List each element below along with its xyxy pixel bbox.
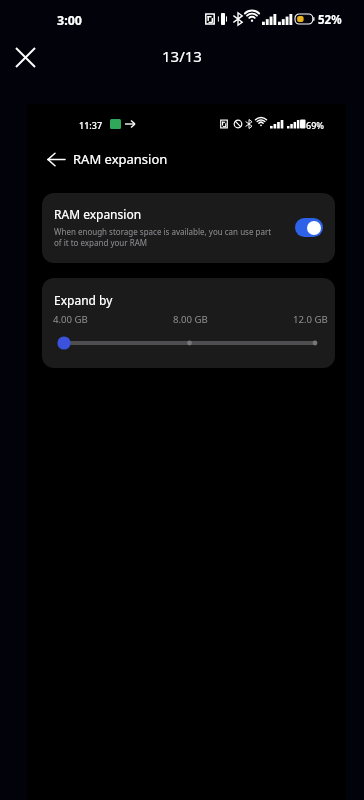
staticText: Expand by	[54, 292, 113, 308]
button[interactable]: RAM expansion	[42, 193, 335, 263]
button[interactable]: RAM expansion toggle	[295, 218, 323, 237]
staticText: 52%	[318, 12, 342, 28]
staticText: 8.00 GB	[173, 313, 208, 326]
staticText: When enough storage space is available, …	[54, 226, 274, 248]
staticText: 3:00	[57, 12, 82, 29]
button[interactable]: Expand by slider	[42, 334, 335, 352]
staticText: 13/13	[162, 46, 202, 66]
staticText: 11:37	[79, 119, 103, 131]
button[interactable]: Close	[7, 39, 43, 75]
button[interactable]: Back	[42, 145, 70, 173]
staticText: 4.00 GB	[53, 313, 88, 326]
staticText: RAM expansion	[54, 206, 142, 222]
staticText: RAM expansion	[73, 150, 168, 168]
staticText: 69%	[306, 119, 324, 131]
staticText: 12.0 GB	[293, 313, 328, 326]
